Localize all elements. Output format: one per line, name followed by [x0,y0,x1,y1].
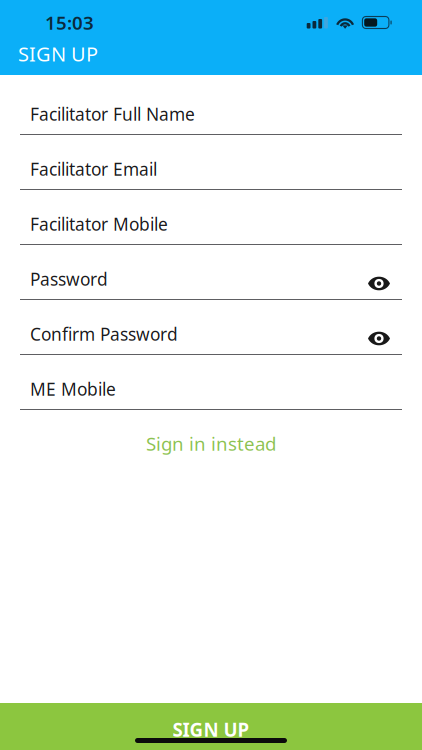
staticText: Confirm Password [30,322,178,345]
staticText: ME Mobile [30,377,116,400]
button[interactable]: Sign in instead [0,410,422,468]
button[interactable]: Show Password [356,268,402,290]
staticText: 15:03 [45,10,94,35]
staticText: SIGN UP [18,40,98,67]
staticText: Facilitator Full Name [30,102,195,125]
staticText: Facilitator Email [30,157,157,180]
staticText: SIGN UP [172,717,249,742]
staticText: Password [30,267,108,290]
staticText: Facilitator Mobile [30,212,168,235]
button[interactable]: SIGN UP [0,703,422,750]
button[interactable]: Show Confirm Password [356,323,402,345]
staticText: Sign in instead [146,431,276,456]
